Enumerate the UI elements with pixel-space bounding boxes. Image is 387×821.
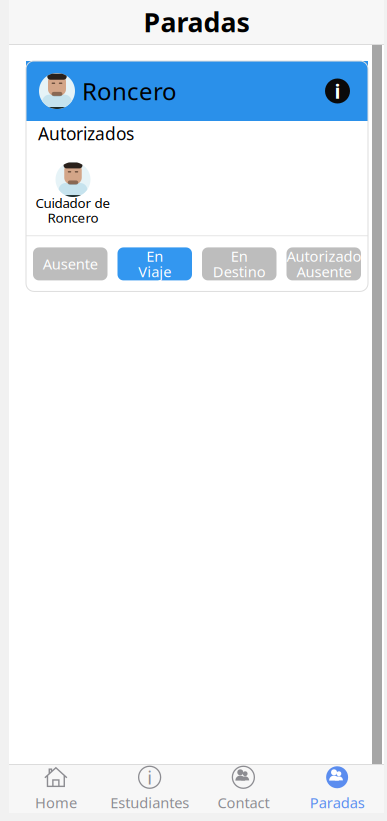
button[interactable]: En xyxy=(117,247,192,280)
staticText: Autorizado xyxy=(286,246,361,266)
staticText: Ausente xyxy=(296,262,351,281)
button[interactable]: Ausente xyxy=(33,247,107,280)
staticText: Paradas xyxy=(143,4,249,40)
button[interactable]: Home xyxy=(9,765,103,813)
staticText: Roncero xyxy=(82,75,177,107)
staticText: Contact xyxy=(217,793,269,812)
staticText: Roncero xyxy=(47,209,98,226)
staticText: Autorizados xyxy=(38,122,134,145)
staticText: En xyxy=(146,246,163,266)
button[interactable]: Paradas xyxy=(290,765,384,813)
button[interactable]: En xyxy=(202,247,276,280)
staticText: Home xyxy=(35,793,77,812)
staticText: Paradas xyxy=(310,793,365,812)
button[interactable]: Contact xyxy=(196,765,290,813)
staticText: Estudiantes xyxy=(110,793,189,812)
staticText: i xyxy=(334,78,340,104)
button[interactable]: Info xyxy=(321,74,354,107)
staticText: Ausente xyxy=(43,254,98,274)
button[interactable]: Autorizado xyxy=(286,247,361,280)
button[interactable]: i xyxy=(103,765,197,813)
staticText: Destino xyxy=(213,262,266,281)
staticText: Viaje xyxy=(138,262,171,281)
staticText: En xyxy=(231,246,248,266)
staticText: Cuidador de xyxy=(35,194,110,212)
staticText: i xyxy=(147,765,152,790)
button[interactable]: Cuidador de xyxy=(35,146,111,226)
